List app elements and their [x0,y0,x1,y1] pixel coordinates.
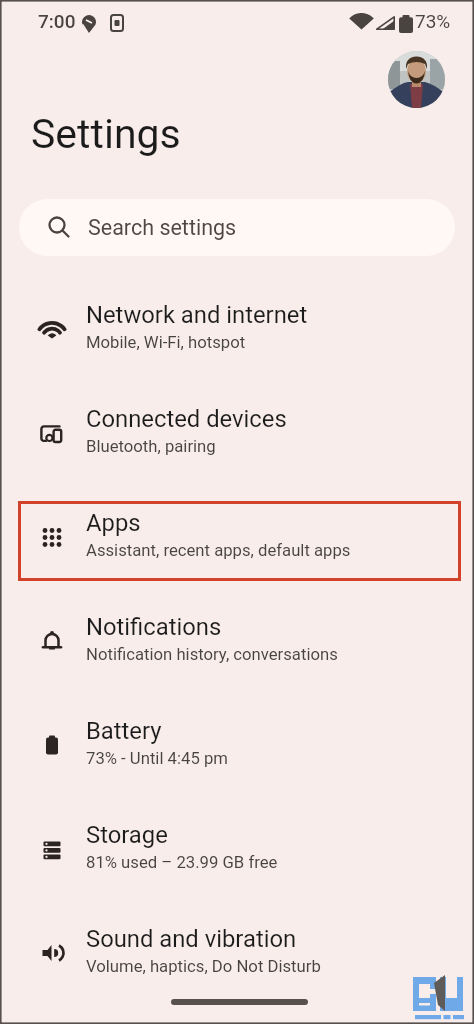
staticText: Battery [86,717,162,745]
staticText: Volume, haptics, Do Not Disturb [86,957,321,977]
staticText: Apps [86,509,141,537]
staticText: Connected devices [86,405,287,433]
button[interactable]: Connected devices [0,381,474,485]
staticText: Notification history, conversations [86,645,338,665]
staticText: Notifications [86,613,222,641]
staticText: 73% [415,10,451,32]
button[interactable]: Sound and vibration [0,901,474,1005]
button[interactable] [388,51,445,108]
button[interactable]: Apps [0,485,474,589]
staticText: Storage [86,821,168,849]
staticText: Bluetooth, pairing [86,437,216,457]
staticText: Search settings [88,215,237,240]
staticText: Mobile, Wi-Fi, hotspot [86,333,246,353]
button[interactable]: Storage [0,797,474,901]
staticText: Settings [31,110,181,158]
staticText: 81% used – 23.99 GB free [86,853,278,873]
button[interactable]: Search settings [19,199,455,256]
staticText: Sound and vibration [86,925,297,953]
staticText: Network and internet [86,301,308,329]
button[interactable]: Notifications [0,589,474,693]
staticText: 7:00 [38,10,76,32]
staticText: 73% - Until 4:45 pm [86,749,228,769]
button[interactable]: Battery [0,693,474,797]
staticText: Assistant, recent apps, default apps [86,541,351,561]
button[interactable]: Network and internet [0,277,474,381]
